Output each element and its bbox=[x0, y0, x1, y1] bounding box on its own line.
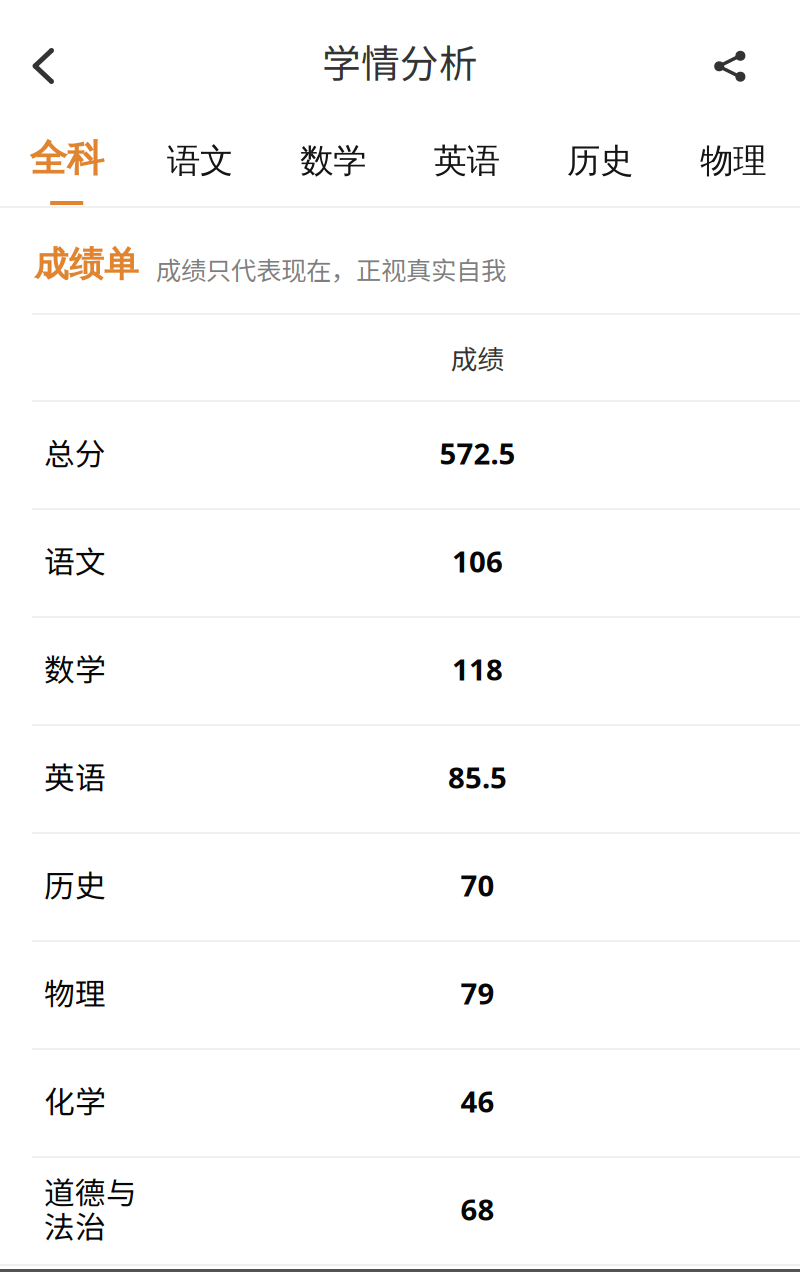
staticText: 历史 bbox=[567, 140, 633, 182]
button[interactable]: 历史 bbox=[0, 834, 800, 940]
staticText: 语文 bbox=[167, 140, 233, 182]
staticText: 学情分析 bbox=[322, 33, 478, 89]
staticText: 成绩单 bbox=[34, 243, 139, 286]
staticText: 总分 bbox=[44, 430, 106, 474]
staticText: 历史 bbox=[44, 862, 106, 906]
staticText: 118 bbox=[452, 649, 503, 689]
staticText: 语文 bbox=[44, 538, 106, 582]
button[interactable]: 数学 bbox=[267, 110, 400, 206]
staticText: 全科 bbox=[30, 135, 104, 182]
staticText: 成绩只代表现在，正视真实自我 bbox=[156, 251, 506, 287]
button[interactable]: Back bbox=[0, 0, 86, 110]
staticText: 道德与 bbox=[44, 1169, 137, 1213]
staticText: 数学 bbox=[300, 140, 366, 182]
button[interactable]: 历史 bbox=[533, 110, 667, 206]
staticText: 数学 bbox=[44, 646, 106, 690]
button[interactable]: 道德与 bbox=[0, 1158, 800, 1264]
button[interactable]: Share bbox=[714, 0, 800, 110]
button[interactable]: 语文 bbox=[133, 110, 267, 206]
button[interactable]: 语文 bbox=[0, 510, 800, 616]
button[interactable]: 全科 bbox=[0, 110, 133, 206]
button[interactable]: 总分 bbox=[0, 402, 800, 508]
staticText: 79 bbox=[460, 973, 494, 1013]
staticText: 物理 bbox=[700, 140, 766, 182]
staticText: 英语 bbox=[434, 140, 500, 182]
button[interactable]: 英语 bbox=[0, 726, 800, 832]
button[interactable]: 物理 bbox=[0, 942, 800, 1048]
button[interactable]: 化学 bbox=[0, 1050, 800, 1156]
staticText: 成绩 bbox=[450, 338, 504, 377]
staticText: 106 bbox=[452, 541, 503, 581]
staticText: 英语 bbox=[44, 754, 106, 798]
staticText: 85.5 bbox=[448, 757, 507, 797]
staticText: 68 bbox=[460, 1189, 494, 1229]
staticText: 化学 bbox=[44, 1078, 106, 1122]
button[interactable]: 物理 bbox=[667, 110, 800, 206]
staticText: 70 bbox=[460, 865, 494, 905]
button[interactable]: 英语 bbox=[400, 110, 533, 206]
button[interactable]: 数学 bbox=[0, 618, 800, 724]
staticText: 46 bbox=[460, 1081, 494, 1121]
staticText: 法治 bbox=[44, 1203, 106, 1247]
staticText: 物理 bbox=[44, 970, 106, 1014]
staticText: 572.5 bbox=[439, 433, 515, 473]
